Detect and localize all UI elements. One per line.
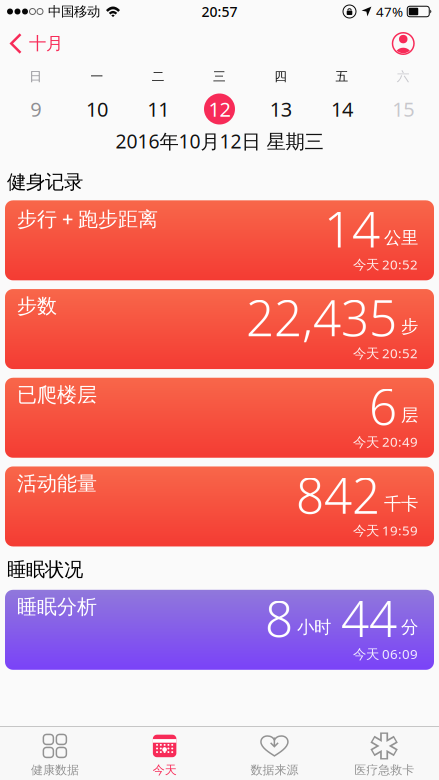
staticText: 44 xyxy=(341,584,397,651)
button[interactable]: 10 xyxy=(66,95,128,123)
staticText: 四 xyxy=(274,68,287,84)
staticText: 睡眠分析 xyxy=(17,594,97,619)
staticText: 一 xyxy=(90,68,103,84)
button[interactable]: 十月 xyxy=(0,33,63,54)
staticText: 五 xyxy=(336,68,349,84)
staticText: 步数 xyxy=(17,294,57,319)
staticText: 14 xyxy=(324,195,380,262)
staticText: 睡眠状况 xyxy=(7,557,83,582)
button[interactable]: 睡眠分析 xyxy=(0,590,439,670)
staticText: 11 xyxy=(147,95,169,123)
staticText: 活动能量 xyxy=(17,471,97,496)
button[interactable]: 今天 xyxy=(110,729,220,777)
button[interactable]: 12 xyxy=(189,93,250,124)
staticText: 今天 20:52 xyxy=(353,255,418,273)
staticText: 步行 + 跑步距离 xyxy=(17,205,158,232)
staticText: 20:57 xyxy=(201,2,237,21)
button[interactable]: 14 xyxy=(311,95,373,123)
staticText: 今天 20:52 xyxy=(353,344,418,362)
staticText: 分 xyxy=(401,616,418,638)
staticText: 千卡 xyxy=(384,493,418,515)
staticText: 三 xyxy=(213,68,226,84)
staticText: 健身记录 xyxy=(7,170,83,194)
button[interactable]: 医疗急救卡 xyxy=(329,729,439,777)
staticText: 今天 19:59 xyxy=(353,521,418,539)
button[interactable]: 13 xyxy=(250,95,311,123)
staticText: 中国移动 xyxy=(48,3,100,20)
button[interactable]: 15 xyxy=(373,95,434,123)
staticText: 六 xyxy=(397,68,410,84)
staticText: 8 xyxy=(265,584,293,651)
staticText: 14 xyxy=(331,95,353,123)
staticText: 今天 xyxy=(153,762,177,777)
staticText: 今天 20:49 xyxy=(353,433,418,451)
staticText: 12 xyxy=(208,95,230,123)
staticText: 健康数据 xyxy=(31,762,79,777)
staticText: 今天 06:09 xyxy=(353,645,418,663)
staticText: 小时 xyxy=(297,616,331,638)
staticText: 步 xyxy=(401,316,418,337)
button[interactable]: 已爬楼层 xyxy=(0,378,439,458)
staticText: 2016年10月12日 星期三 xyxy=(115,128,323,154)
staticText: 22,435 xyxy=(246,284,397,351)
staticText: 日 xyxy=(29,68,42,84)
staticText: 13 xyxy=(270,95,292,123)
button[interactable]: 数据来源 xyxy=(219,729,329,777)
staticText: 10 xyxy=(86,95,108,123)
staticText: 层 xyxy=(401,404,418,426)
staticText: 医疗急救卡 xyxy=(354,762,414,777)
staticText: 842 xyxy=(296,461,380,528)
button[interactable]: 11 xyxy=(128,95,189,123)
button[interactable] xyxy=(392,33,439,54)
staticText: 十月 xyxy=(29,33,63,54)
staticText: 15 xyxy=(392,95,414,123)
button[interactable]: 步数 xyxy=(0,289,439,369)
staticText: 公里 xyxy=(384,227,418,249)
button[interactable]: 步行 + 跑步距离 xyxy=(0,200,439,280)
staticText: 9 xyxy=(30,95,41,123)
button[interactable]: 9 xyxy=(5,95,66,123)
staticText: 数据来源 xyxy=(250,762,298,777)
staticText: 6 xyxy=(369,372,397,439)
button[interactable]: 活动能量 xyxy=(0,466,439,546)
button[interactable]: 健康数据 xyxy=(0,729,110,777)
staticText: 47% xyxy=(376,2,403,21)
staticText: 二 xyxy=(152,68,165,84)
staticText: 已爬楼层 xyxy=(17,382,97,407)
